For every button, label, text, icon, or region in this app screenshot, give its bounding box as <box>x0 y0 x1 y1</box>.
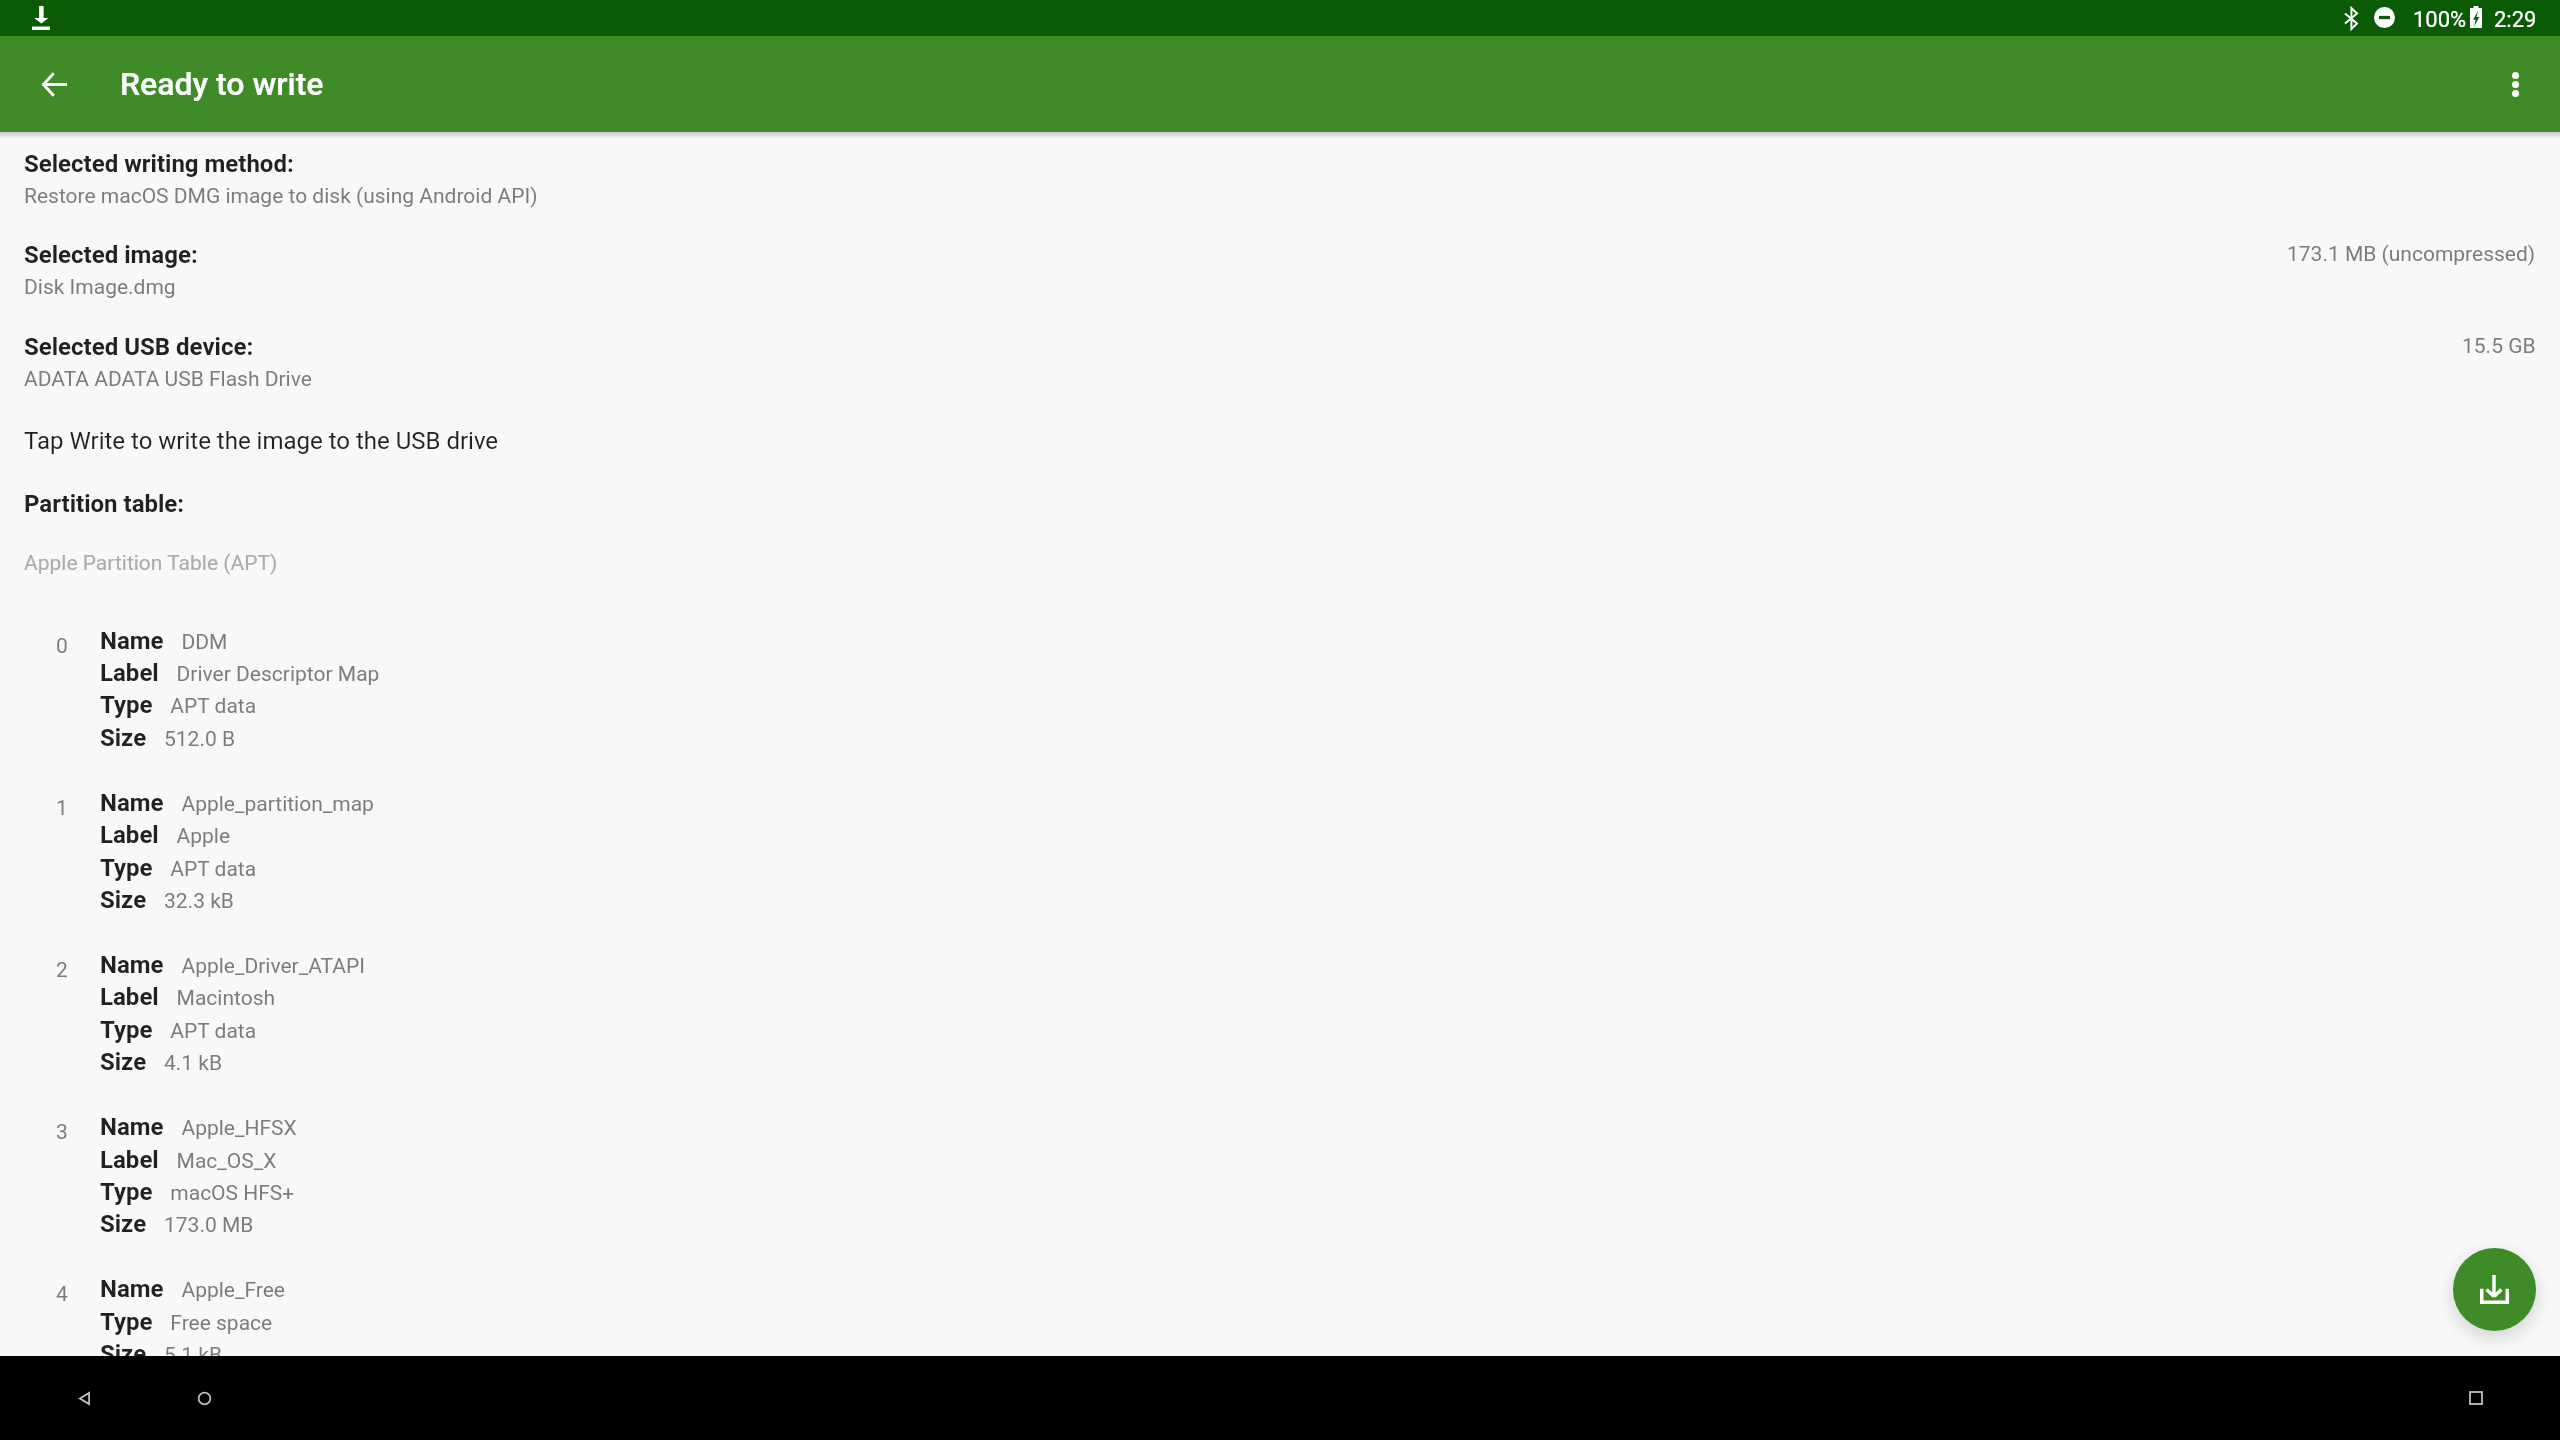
staticText: 2 <box>56 958 68 983</box>
staticText: 15.5 GB <box>2462 334 2536 359</box>
staticText: Size 32.3 kB <box>100 886 234 914</box>
staticText: Partition table: <box>24 490 185 518</box>
staticText: Ready to write <box>120 65 324 103</box>
staticText: Name Apple_HFSX <box>100 1113 297 1141</box>
button[interactable]: Home <box>164 1358 244 1438</box>
staticText: Type APT data <box>100 1016 257 1044</box>
staticText: Type Free space <box>100 1308 273 1336</box>
staticText: Restore macOS DMG image to disk (using A… <box>24 184 538 209</box>
staticText: Name Apple_partition_map <box>100 789 374 817</box>
button[interactable]: More options <box>2473 36 2557 132</box>
button[interactable]: Write <box>2453 1248 2536 1331</box>
staticText: Disk Image.dmg <box>24 275 176 300</box>
staticText: Selected writing method: <box>24 150 294 178</box>
staticText: Selected image: <box>24 241 198 269</box>
staticText: Name Apple_Driver_ATAPI <box>100 951 365 979</box>
staticText: Type macOS HFS+ <box>100 1178 295 1206</box>
staticText: Size 173.0 MB <box>100 1210 254 1238</box>
staticText: 4 <box>56 1282 68 1307</box>
staticText: Size 5.1 kB <box>100 1340 223 1368</box>
staticText: Apple Partition Table (APT) <box>24 551 278 576</box>
staticText: 173.1 MB (uncompressed) <box>2287 242 2536 267</box>
staticText: ADATA ADATA USB Flash Drive <box>24 367 312 392</box>
staticText: Label Mac_OS_X <box>100 1146 277 1174</box>
staticText: Label Apple <box>100 821 231 849</box>
staticText: Label Macintosh <box>100 983 276 1011</box>
button[interactable]: Navigate up <box>6 36 102 132</box>
staticText: Size 4.1 kB <box>100 1048 223 1076</box>
button[interactable]: Back <box>44 1358 124 1438</box>
staticText: Size 512.0 B <box>100 724 236 752</box>
staticText: Type APT data <box>100 854 257 882</box>
staticText: Type APT data <box>100 691 257 719</box>
staticText: 100% <box>2413 7 2467 33</box>
staticText: Name DDM <box>100 627 228 655</box>
staticText: Selected USB device: <box>24 333 254 361</box>
staticText: Tap Write to write the image to the USB … <box>24 427 499 455</box>
staticText: 1 <box>56 796 68 821</box>
staticText: 3 <box>56 1120 68 1145</box>
staticText: Label Driver Descriptor Map <box>100 659 380 687</box>
button[interactable]: Recent apps <box>2436 1358 2516 1438</box>
staticText: Name Apple_Free <box>100 1275 285 1303</box>
staticText: 2:29 <box>2494 7 2537 33</box>
staticText: 0 <box>56 634 68 659</box>
